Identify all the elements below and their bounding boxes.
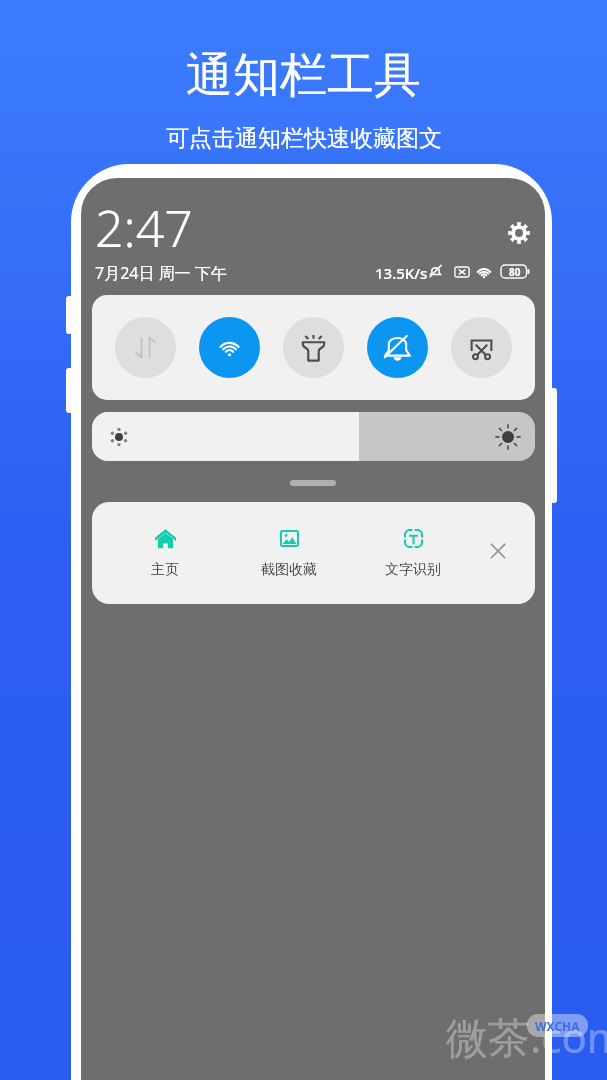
staticText: 可点击通知栏快速收藏图文: [166, 124, 442, 153]
staticText: 通知栏工具: [186, 46, 421, 105]
button[interactable]: [92, 412, 535, 461]
button[interactable]: Screenshot: [451, 317, 512, 378]
staticText: 80: [509, 265, 521, 278]
staticText: 主页: [151, 561, 179, 579]
staticText: 微茶.com: [446, 1008, 607, 1065]
button[interactable]: Settings: [502, 216, 535, 249]
staticText: 截图收藏: [261, 561, 317, 579]
staticText: 7月24日 周一 下午: [95, 262, 227, 284]
button[interactable]: Wi-Fi: [199, 317, 260, 378]
button[interactable]: 主页: [131, 502, 199, 604]
button[interactable]: 文字识别: [379, 502, 447, 604]
staticText: WXCHA: [535, 1018, 580, 1034]
button[interactable]: Do not disturb: [367, 317, 428, 378]
button[interactable]: Flashlight: [283, 317, 344, 378]
staticText: 13.5K/s: [375, 263, 428, 283]
staticText: 文字识别: [385, 561, 441, 579]
button[interactable]: Mobile data: [115, 317, 176, 378]
button[interactable]: Close: [474, 502, 522, 604]
staticText: 2:47: [95, 194, 193, 262]
button[interactable]: 截图收藏: [255, 502, 323, 604]
